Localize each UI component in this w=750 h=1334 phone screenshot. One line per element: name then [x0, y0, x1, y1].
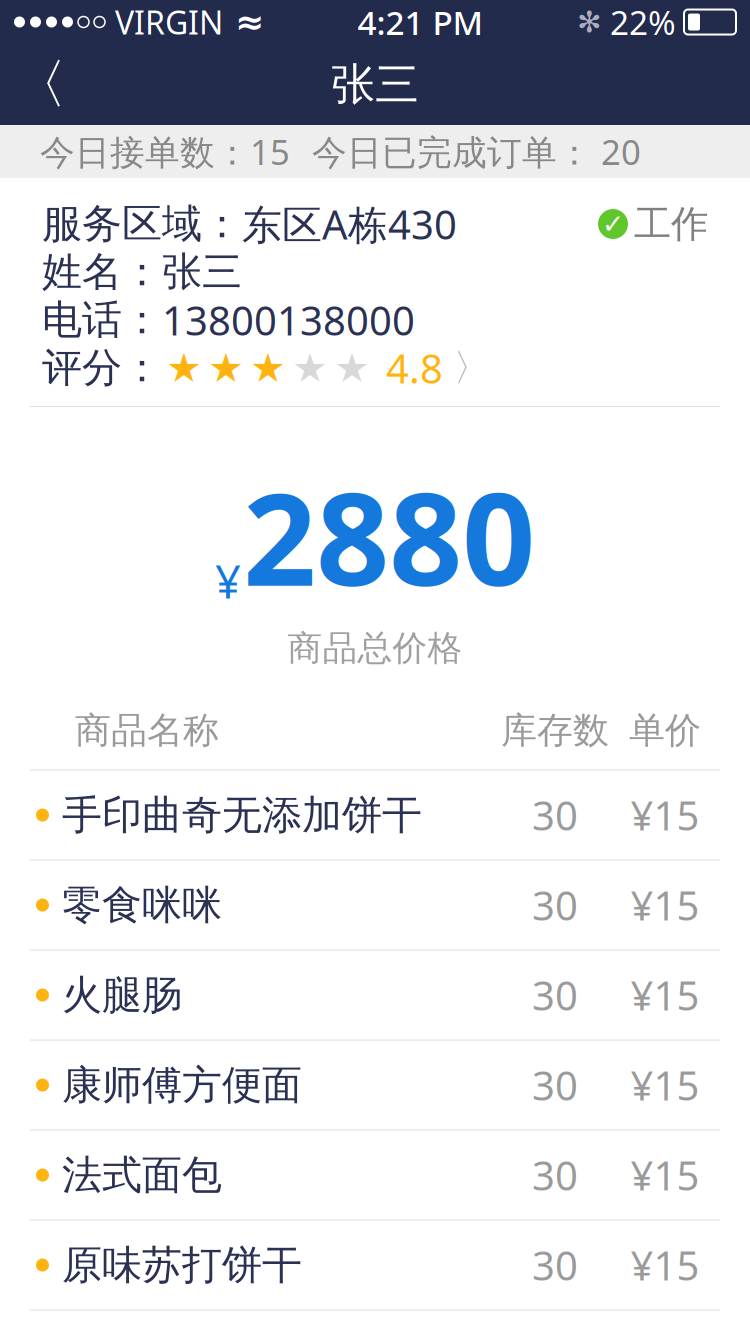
staticText: 张三 [331, 57, 419, 111]
staticText: 30 [532, 1148, 578, 1202]
staticText: 手印曲奇无添加饼干 [62, 790, 422, 840]
staticText: ★ [334, 345, 370, 391]
staticText: 商品名称 [75, 708, 219, 753]
staticText: 东区A栋430 [242, 197, 457, 250]
staticText: 22% [610, 0, 676, 44]
staticText: 商品总价格 [287, 627, 462, 670]
staticText: ✓ [602, 209, 624, 239]
staticText: 30 [532, 878, 578, 932]
staticText: 评分： [42, 343, 162, 392]
staticText: 单价 [629, 708, 701, 753]
staticText: 30 [532, 1058, 578, 1112]
button[interactable]: 零食咪咪 [0, 861, 750, 950]
staticText: 30 [532, 788, 578, 842]
button[interactable]: 原味苏打饼干 [0, 1221, 750, 1310]
staticText: 2880 [243, 451, 535, 621]
staticText: ¥15 [630, 1238, 699, 1292]
staticText: 姓名： [42, 247, 162, 296]
staticText: ★ [208, 345, 244, 391]
staticText: ¥15 [630, 968, 699, 1022]
staticText: ¥15 [630, 788, 699, 842]
staticText: ≈ [235, 2, 264, 42]
staticText: ★ [166, 345, 202, 391]
staticText: ¥15 [630, 1058, 699, 1112]
staticText: 零食咪咪 [62, 880, 222, 930]
staticText: 30 [532, 968, 578, 1022]
staticText: 〉 [453, 345, 490, 391]
staticText: VIRGIN [115, 1, 223, 43]
staticText: 4.8 [386, 341, 443, 394]
button[interactable]: Back [0, 44, 80, 125]
button[interactable]: 评分： [42, 344, 708, 392]
staticText: 原味苏打饼干 [62, 1240, 302, 1290]
staticText: 今日接单数：15 [40, 128, 290, 174]
staticText: ★ [250, 345, 286, 391]
staticText: 火腿肠 [62, 970, 182, 1020]
staticText: 法式面包 [62, 1150, 222, 1200]
staticText: ¥15 [630, 1148, 699, 1202]
staticText: 〈 [13, 52, 66, 117]
staticText: ✻ [577, 5, 602, 39]
staticText: 13800138000 [162, 293, 415, 346]
staticText: 工作 [634, 201, 708, 247]
button[interactable]: 康师傅方便面 [0, 1041, 750, 1130]
staticText: 30 [532, 1238, 578, 1292]
staticText: 张三 [162, 247, 242, 296]
button[interactable]: 火腿肠 [0, 951, 750, 1040]
staticText: 服务区域： [42, 199, 242, 248]
staticText: 4:21 PM [357, 0, 483, 44]
staticText: 库存数 [501, 708, 609, 753]
button[interactable]: 法式面包 [0, 1131, 750, 1220]
staticText: ¥15 [630, 878, 699, 932]
staticText: ★ [292, 345, 328, 391]
staticText: 今日已完成订单： 20 [312, 128, 641, 174]
staticText: 电话： [42, 295, 162, 344]
button[interactable]: 手印曲奇无添加饼干 [0, 771, 750, 860]
staticText: ¥ [215, 551, 241, 611]
staticText: 康师傅方便面 [62, 1060, 302, 1110]
